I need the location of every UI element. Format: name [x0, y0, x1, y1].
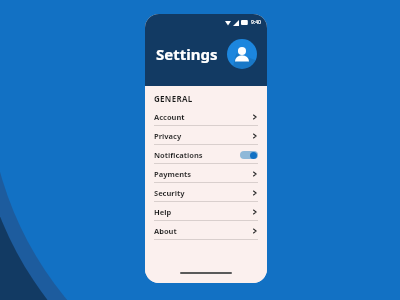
- staticText: Security: [154, 188, 252, 198]
- staticText: GENERAL: [154, 93, 193, 104]
- button[interactable]: Security: [154, 185, 258, 204]
- button[interactable]: About: [154, 223, 258, 242]
- staticText: Notifications: [154, 150, 240, 160]
- button[interactable]: Notifications: [154, 147, 258, 166]
- staticText: 9:40: [251, 19, 261, 26]
- staticText: Privacy: [154, 131, 252, 141]
- other: Notifications toggle: [240, 151, 258, 159]
- button[interactable]: Payments: [154, 166, 258, 185]
- staticText: Account: [154, 112, 252, 122]
- button[interactable]: Account: [154, 109, 258, 128]
- staticText: Settings: [156, 44, 218, 64]
- staticText: Help: [154, 207, 252, 217]
- button[interactable]: Help: [154, 204, 258, 223]
- staticText: About: [154, 226, 252, 236]
- button[interactable]: Profile: [227, 39, 257, 69]
- button[interactable]: Privacy: [154, 128, 258, 147]
- staticText: Payments: [154, 169, 252, 179]
